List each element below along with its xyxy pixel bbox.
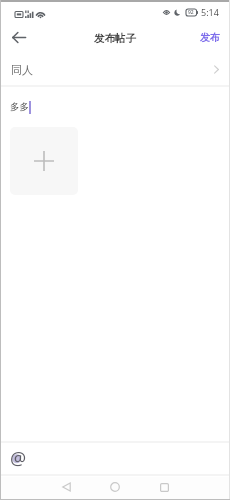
button[interactable]: Add photo xyxy=(10,127,78,195)
staticText: 5:14 xyxy=(201,6,219,18)
staticText: @ xyxy=(10,446,27,468)
button[interactable]: 发布 xyxy=(196,26,224,49)
button[interactable]: 同人 xyxy=(0,53,230,86)
staticText: 发布帖子 xyxy=(94,32,136,45)
button[interactable]: Home xyxy=(104,476,126,498)
button[interactable]: Back xyxy=(55,476,77,498)
button[interactable]: Back xyxy=(5,23,33,51)
staticText: 发布 xyxy=(200,31,220,44)
staticText: 92 xyxy=(188,9,194,16)
staticText: 同人 xyxy=(11,63,33,77)
staticText: 多多 xyxy=(10,101,29,113)
button[interactable]: Recent apps xyxy=(153,476,175,498)
button[interactable]: Mention someone xyxy=(7,446,29,468)
